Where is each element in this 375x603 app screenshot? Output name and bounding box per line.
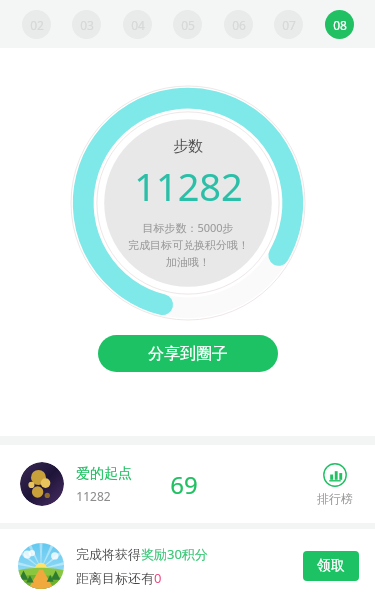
staticText: 目标步数：5000步	[142, 220, 234, 235]
staticText: 07	[282, 17, 296, 33]
staticText: 完成目标可兑换积分哦！	[128, 238, 249, 252]
button[interactable]: 04	[123, 10, 152, 39]
button[interactable]: 07	[274, 10, 303, 39]
staticText: 69	[170, 468, 198, 501]
staticText: 04	[131, 17, 145, 33]
staticText: 距离目标还有0	[76, 569, 162, 587]
staticText: 11282	[76, 488, 111, 504]
staticText: 08	[333, 17, 347, 33]
staticText: 排行榜	[317, 491, 353, 506]
staticText: 05	[181, 17, 195, 33]
staticText: 分享到圈子	[148, 344, 228, 364]
button[interactable]: 分享到圈子	[98, 335, 278, 372]
staticText: 03	[80, 17, 94, 33]
staticText: 爱的起点	[76, 465, 132, 483]
staticText: 步数	[173, 137, 203, 156]
button[interactable]: 爱的起点	[0, 445, 375, 523]
staticText: 领取	[317, 557, 345, 575]
staticText: 11282	[134, 160, 243, 212]
button[interactable]: 06	[224, 10, 253, 39]
button[interactable]: 排行榜	[313, 459, 357, 510]
button[interactable]: 08	[325, 10, 354, 39]
staticText: 完成将获得奖励30积分	[76, 545, 208, 563]
button[interactable]: 02	[22, 10, 51, 39]
staticText: 02	[30, 17, 44, 33]
staticText: 06	[232, 17, 246, 33]
staticText: 加油哦！	[166, 255, 210, 269]
button[interactable]: 05	[173, 10, 202, 39]
button[interactable]: 领取	[303, 551, 359, 581]
button[interactable]: 03	[72, 10, 101, 39]
